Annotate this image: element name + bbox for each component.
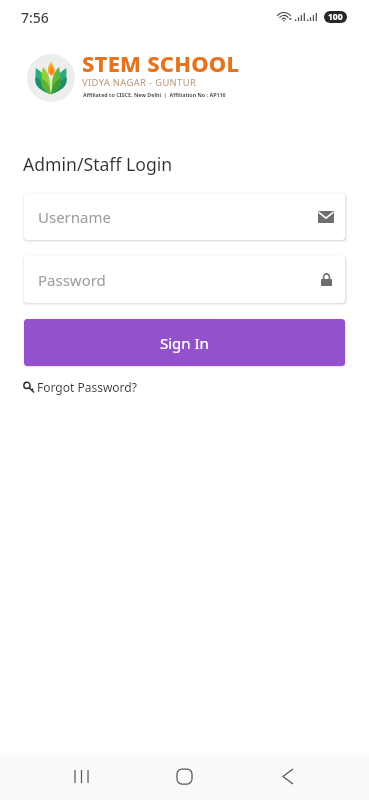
button[interactable]: Forgot Password? [23, 379, 137, 395]
button[interactable]: Recent apps [58, 753, 105, 800]
button[interactable]: Username [24, 193, 345, 240]
button[interactable]: Password [24, 256, 345, 303]
staticText: Forgot Password? [37, 379, 137, 395]
staticText: 100 [328, 11, 343, 23]
staticText: Password [38, 270, 106, 290]
staticText: Sign In [160, 333, 209, 353]
staticText: Admin/Staff Login [23, 152, 173, 176]
staticText: Affiliated to CISCE, New Delhi | Affilia… [83, 91, 226, 98]
staticText: Username [38, 207, 111, 227]
button[interactable]: Home [161, 753, 208, 800]
staticText: VIDYA NAGAR - GUNTUR [82, 76, 197, 89]
button[interactable]: Back [264, 753, 311, 800]
staticText: STEM SCHOOL [82, 48, 240, 78]
staticText: 7:56 [21, 8, 49, 27]
button[interactable]: Sign In [24, 319, 345, 366]
